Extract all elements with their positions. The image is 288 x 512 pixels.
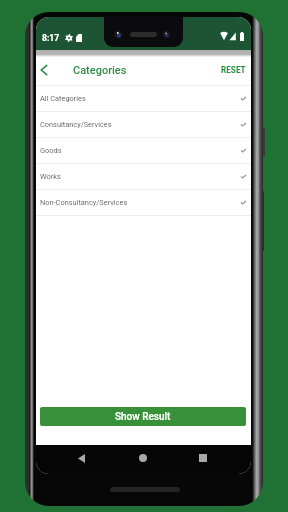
staticText: Consultancy/Services (40, 120, 112, 129)
staticText: Goods (40, 146, 62, 155)
staticText: 8:17 (42, 33, 60, 43)
staticText: Works (40, 172, 61, 181)
button[interactable]: Non-Consultancy/Services (36, 190, 251, 215)
button[interactable]: Show Result (40, 407, 246, 426)
button[interactable]: Home (133, 448, 153, 468)
button[interactable]: RESET (215, 60, 251, 80)
button[interactable]: Consultancy/Services (36, 112, 251, 137)
staticText: All Categories (40, 94, 86, 103)
button[interactable]: Back (36, 59, 51, 81)
button[interactable]: All Categories (36, 86, 251, 111)
button[interactable]: Recents (193, 448, 213, 468)
button[interactable]: Back (71, 448, 91, 468)
button[interactable]: Works (36, 164, 251, 189)
button[interactable]: Goods (36, 138, 251, 163)
staticText: Show Result (115, 411, 171, 423)
staticText: Categories (73, 64, 127, 77)
staticText: Non-Consultancy/Services (40, 198, 128, 207)
staticText: RESET (221, 65, 246, 75)
